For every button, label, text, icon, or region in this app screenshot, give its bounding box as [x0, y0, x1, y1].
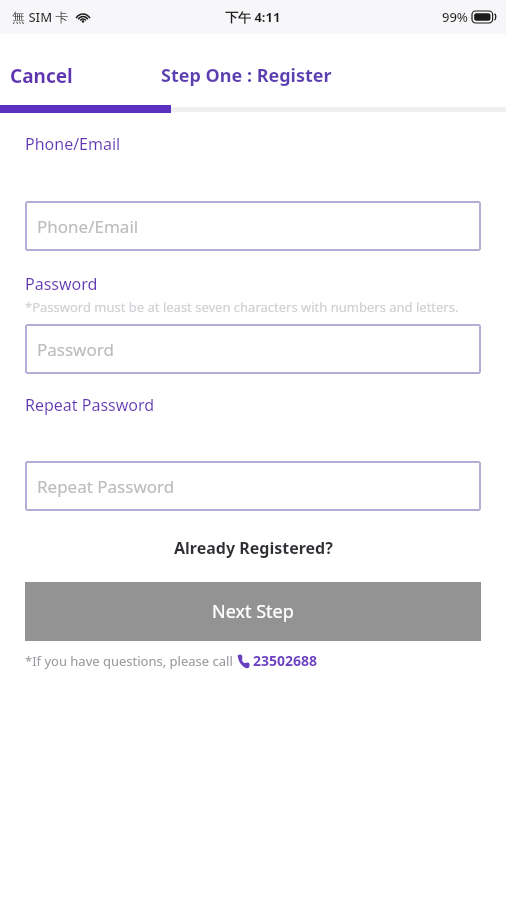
staticText: Cancel: [10, 63, 73, 89]
button[interactable]: Next Step: [25, 582, 481, 641]
staticText: Repeat Password: [37, 475, 175, 498]
button[interactable]: Already Registered?: [25, 534, 481, 562]
staticText: 下午 4:11: [225, 8, 281, 26]
button[interactable]: Call 23502688: [237, 651, 318, 670]
staticText: Password: [37, 338, 114, 361]
staticText: Phone/Email: [25, 133, 121, 155]
staticText: Next Step: [212, 599, 294, 624]
staticText: Repeat Password: [25, 394, 155, 416]
staticText: 99%: [442, 8, 468, 26]
staticText: Phone/Email: [37, 215, 139, 238]
button[interactable]: Repeat Password: [25, 461, 481, 511]
staticText: Password: [25, 273, 98, 295]
staticText: *If you have questions, please call: [25, 652, 237, 670]
staticText: *Password must be at least seven charact…: [25, 298, 459, 316]
button[interactable]: Cancel: [0, 57, 85, 95]
staticText: Step One : Register: [161, 63, 332, 88]
staticText: Already Registered?: [174, 537, 333, 559]
button[interactable]: Password: [25, 324, 481, 374]
button[interactable]: Phone/Email: [25, 201, 481, 251]
staticText: 23502688: [253, 651, 318, 670]
staticText: 無 SIM 卡: [12, 8, 69, 26]
